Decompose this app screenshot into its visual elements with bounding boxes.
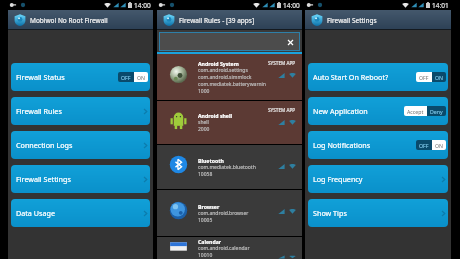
- staticText: OFF: [419, 142, 429, 149]
- staticText: Bluetooth: [198, 157, 224, 164]
- button[interactable]: Clear search: [159, 32, 300, 51]
- button[interactable]: Connection Logs: [11, 131, 150, 159]
- staticText: 10010: [198, 252, 213, 259]
- staticText: Log Frequency: [313, 174, 363, 184]
- button[interactable]: Log Frequency: [308, 165, 448, 193]
- staticText: Auto Start On Reboot?: [313, 72, 389, 82]
- staticText: SYSTEM APP: [268, 60, 296, 66]
- staticText: Firewall Rules - [39 apps]: [179, 16, 255, 25]
- staticText: 10005: [198, 217, 213, 224]
- staticText: New Application: [313, 106, 368, 116]
- staticText: Firewall Status: [16, 72, 65, 82]
- button[interactable]: Show Tips: [308, 199, 448, 227]
- button[interactable]: Auto Start On Reboot?: [308, 63, 448, 91]
- staticText: Accept: [407, 108, 424, 115]
- staticText: 2000: [198, 126, 210, 133]
- button[interactable]: Android System: [157, 54, 302, 100]
- staticText: 14:00: [283, 1, 300, 10]
- staticText: Firewall Rules: [16, 106, 62, 116]
- staticText: Calendar: [198, 238, 222, 245]
- button[interactable]: OFF: [118, 72, 148, 82]
- staticText: com.android.settings: [198, 67, 248, 74]
- button[interactable]: Log Notifications: [308, 131, 448, 159]
- staticText: 14:00: [134, 1, 151, 10]
- staticText: 14:01: [432, 1, 449, 10]
- staticText: OFF: [121, 74, 131, 81]
- button[interactable]: Firewall Settings: [11, 165, 150, 193]
- button[interactable]: OFF: [416, 72, 446, 82]
- button[interactable]: Clear search: [284, 36, 296, 48]
- staticText: 10058: [198, 171, 213, 178]
- staticText: Log Notifications: [313, 140, 371, 150]
- button[interactable]: Accept: [404, 106, 446, 116]
- staticText: 1000: [198, 88, 210, 95]
- button[interactable]: Firewall Status: [11, 63, 150, 91]
- staticText: SYSTEM APP: [268, 107, 296, 113]
- button[interactable]: Browser: [157, 190, 302, 236]
- button[interactable]: Bluetooth: [157, 145, 302, 189]
- staticText: com.android.browser: [198, 210, 249, 217]
- button[interactable]: Calendar: [157, 237, 302, 259]
- staticText: Firewall Settings: [16, 174, 71, 184]
- staticText: ON: [435, 74, 443, 81]
- staticText: ON: [137, 74, 145, 81]
- button[interactable]: OFF: [416, 140, 446, 150]
- staticText: Android shell: [198, 112, 233, 119]
- staticText: Data Usage: [16, 208, 55, 218]
- staticText: com.mediatek.batterywarning: [198, 81, 266, 88]
- staticText: Browser: [198, 203, 220, 210]
- staticText: com.mediatek.bluetooth: [198, 164, 256, 171]
- staticText: Firewall Settings: [327, 16, 377, 25]
- button[interactable]: New Application: [308, 97, 448, 125]
- staticText: Connection Logs: [16, 140, 73, 150]
- staticText: OFF: [419, 74, 429, 81]
- staticText: Mobiwol No Root Firewall: [30, 16, 108, 25]
- staticText: com.android.simmlock: [198, 74, 252, 81]
- button[interactable]: Firewall Rules: [11, 97, 150, 125]
- staticText: Deny: [430, 108, 443, 115]
- staticText: com.android.calendar: [198, 245, 250, 252]
- staticText: ON: [435, 142, 443, 149]
- staticText: Android System: [198, 60, 239, 67]
- button[interactable]: Android shell: [157, 101, 302, 144]
- staticText: shell: [198, 119, 209, 126]
- staticText: Show Tips: [313, 208, 347, 218]
- button[interactable]: Data Usage: [11, 199, 150, 227]
